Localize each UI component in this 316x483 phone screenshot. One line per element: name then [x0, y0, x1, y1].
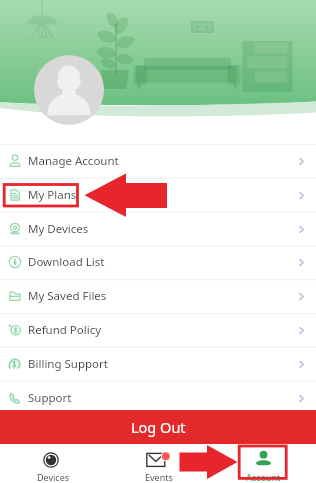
staticText: My Saved Files — [28, 288, 107, 304]
staticText: Download List — [28, 254, 105, 270]
staticText: My Plans — [28, 187, 77, 203]
button[interactable]: Devices — [0, 444, 106, 483]
button[interactable]: Billing Support — [0, 347, 316, 381]
staticText: Billing Support — [28, 356, 108, 372]
button[interactable]: Manage Account — [0, 144, 316, 178]
staticText: Events — [145, 471, 173, 483]
staticText: Log Out — [131, 417, 186, 437]
staticText: Devices — [37, 471, 70, 483]
button[interactable]: Support — [0, 381, 316, 415]
button[interactable]: My Devices — [0, 212, 316, 246]
staticText: Support — [28, 390, 72, 406]
staticText: Account — [246, 471, 281, 483]
button[interactable]: My Plans — [0, 178, 316, 212]
button[interactable]: Log Out — [0, 410, 316, 444]
button[interactable]: Refund Policy — [0, 313, 316, 347]
button[interactable]: Download List — [0, 245, 316, 279]
button[interactable]: My Saved Files — [0, 279, 316, 313]
staticText: Refund Policy — [28, 322, 102, 338]
staticText: My Devices — [28, 221, 89, 237]
button[interactable]: Account — [211, 444, 316, 483]
button[interactable]: Events — [106, 444, 211, 483]
staticText: Manage Account — [28, 153, 119, 169]
